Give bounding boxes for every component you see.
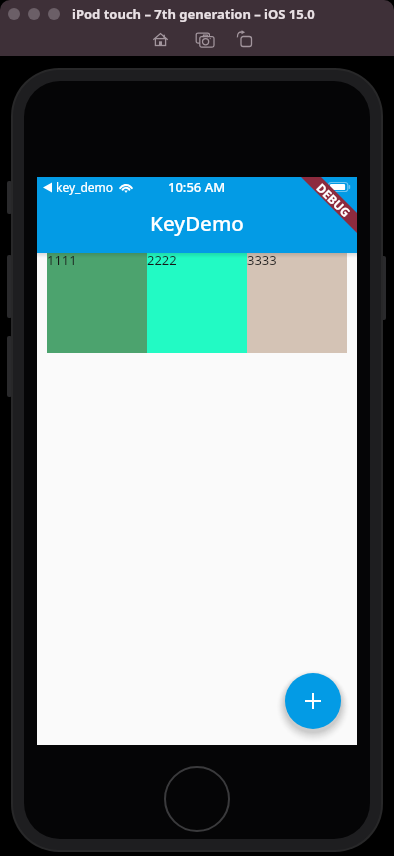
button[interactable]: Rotate — [223, 27, 265, 51]
button[interactable]: Window button — [28, 8, 40, 20]
button[interactable]: 1111 — [47, 253, 147, 353]
staticText: 10:56 AM — [168, 178, 226, 196]
staticText: 2222 — [147, 251, 177, 269]
button[interactable]: Add — [285, 673, 341, 729]
button[interactable]: Home — [139, 27, 181, 51]
staticText: KeyDemo — [150, 209, 244, 237]
staticText: 1111 — [47, 251, 77, 269]
button[interactable]: Screenshot — [181, 27, 223, 51]
staticText: key_demo — [56, 179, 114, 195]
staticText: DEBUG — [313, 179, 354, 220]
staticText: iPod touch – 7th generation – iOS 15.0 — [72, 5, 315, 23]
button[interactable]: 3333 — [247, 253, 347, 353]
button[interactable]: Window button — [48, 8, 60, 20]
button[interactable]: 2222 — [147, 253, 247, 353]
button[interactable]: Window button — [8, 8, 20, 20]
staticText: 3333 — [247, 251, 277, 269]
